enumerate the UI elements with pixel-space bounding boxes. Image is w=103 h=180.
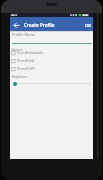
staticText: OK bbox=[85, 23, 92, 29]
staticText: Turn off bluetooth bbox=[17, 51, 44, 55]
staticText: Profile Name bbox=[12, 32, 36, 37]
button[interactable]: Turn off GPS bbox=[10, 67, 60, 74]
button[interactable]: Profile Name bbox=[11, 32, 92, 45]
staticText: Create Profile bbox=[24, 22, 55, 28]
staticText: Turn off GPS bbox=[17, 67, 36, 71]
staticText: Turn off wifi bbox=[17, 59, 35, 63]
button[interactable] bbox=[10, 80, 92, 87]
button[interactable]: Turn off wifi bbox=[10, 59, 60, 66]
staticText: Actions bbox=[12, 48, 23, 52]
button[interactable]: OK bbox=[84, 22, 91, 28]
button[interactable]: Turn off bluetooth bbox=[10, 51, 60, 58]
button[interactable] bbox=[12, 21, 21, 30]
staticText: Brightness bbox=[12, 75, 28, 79]
